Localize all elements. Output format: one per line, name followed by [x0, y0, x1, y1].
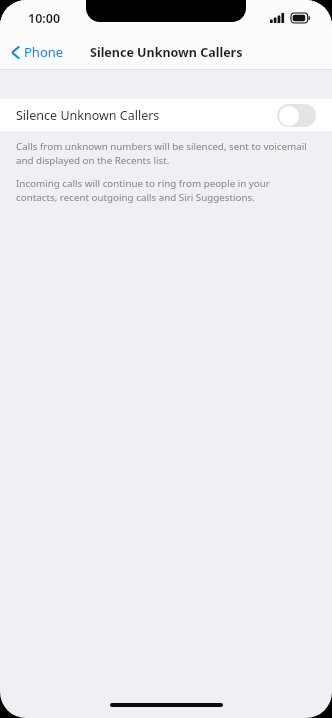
button[interactable]: Silence Unknown Callers toggle, off: [277, 104, 316, 127]
staticText: 10:00: [28, 10, 61, 27]
staticText: Calls from unknown numbers will be silen…: [16, 140, 312, 166]
button[interactable]: Silence Unknown Callers: [0, 99, 332, 131]
staticText: Incoming calls will continue to ring fro…: [16, 177, 312, 203]
button[interactable]: Phone: [0, 39, 72, 65]
staticText: Silence Unknown Callers: [16, 107, 160, 124]
staticText: Silence Unknown Callers: [90, 44, 243, 61]
staticText: Phone: [24, 43, 64, 61]
